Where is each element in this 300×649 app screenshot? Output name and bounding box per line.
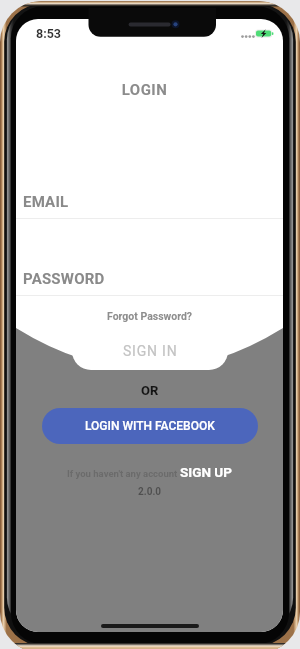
- button[interactable]: SIGN UP: [180, 464, 232, 480]
- staticText: EMAIL: [23, 193, 69, 211]
- staticText: SIGN IN: [123, 343, 178, 359]
- staticText: 8:53: [36, 26, 62, 41]
- staticText: SIGN UP: [180, 464, 232, 480]
- staticText: 2.0.0: [138, 486, 162, 498]
- staticText: OR: [141, 383, 159, 398]
- button[interactable]: PASSWORD: [16, 270, 283, 296]
- button[interactable]: Forgot Password?: [104, 307, 196, 325]
- button[interactable]: LOGIN WITH FACEBOOK: [42, 408, 258, 444]
- staticText: LOGIN: [16, 81, 278, 99]
- staticText: PASSWORD: [23, 270, 105, 288]
- staticText: LOGIN WITH FACEBOOK: [85, 419, 215, 433]
- other: Home: [101, 624, 199, 628]
- button[interactable]: EMAIL: [16, 193, 283, 219]
- button[interactable]: SIGN IN: [72, 332, 228, 370]
- staticText: If you haven't any account: [67, 468, 178, 479]
